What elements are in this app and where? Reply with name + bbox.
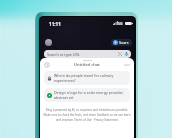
staticText: Search or type URL (47, 52, 80, 57)
staticText: 5G (118, 21, 123, 26)
staticText: Search (119, 40, 130, 45)
staticText: 11:11 (49, 21, 61, 27)
button[interactable]: Recent chats (44, 62, 50, 68)
staticText: Untitled chat (74, 62, 100, 68)
staticText: Where do people travel for culinary expe… (54, 73, 126, 83)
button[interactable]: Design a logo for a solar energy provide… (44, 88, 130, 102)
button[interactable]: More options (124, 62, 130, 68)
button[interactable]: Search or type URL (44, 50, 131, 58)
button[interactable]: Where do people travel for culinary expe… (44, 71, 130, 85)
other: Search with camera (118, 52, 122, 56)
staticText: Design a logo for a solar energy provide… (54, 90, 126, 100)
other: Search with voice (125, 52, 128, 56)
button[interactable]: Account (45, 39, 52, 46)
staticText: Bing is powered by AI, so surprises and … (42, 108, 132, 121)
button[interactable]: Search (111, 39, 132, 46)
